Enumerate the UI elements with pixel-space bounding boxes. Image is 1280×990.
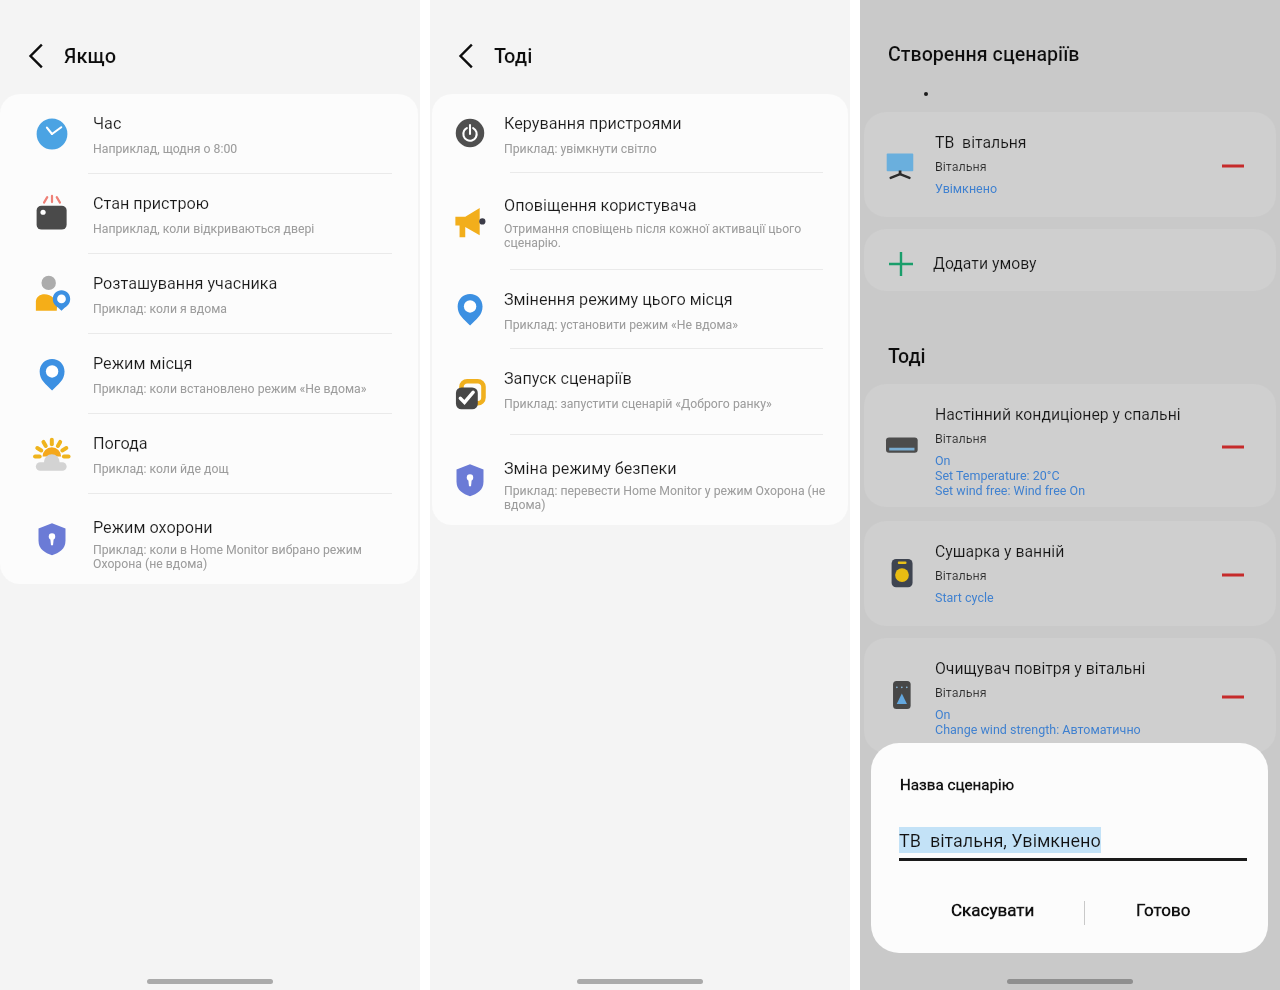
staticText: Приклад: увімкнути світло <box>504 142 657 156</box>
staticText: Вітальня <box>935 431 987 446</box>
staticText: Приклад: установити режим «Не вдома» <box>504 318 739 332</box>
staticText: On <box>935 707 951 722</box>
staticText: Розташування учасника <box>93 274 278 293</box>
button[interactable]: Скасувати <box>908 891 1078 929</box>
staticText: Зміна режиму безпеки <box>504 459 677 478</box>
staticText: Приклад: коли в Home Monitor вибрано реж… <box>93 543 362 571</box>
staticText: Скасувати <box>951 900 1035 920</box>
staticText: Стан пристрою <box>93 194 209 213</box>
staticText: Настінний кондиціонер у спальні <box>935 405 1181 424</box>
staticText: Готово <box>1136 900 1191 920</box>
button[interactable]: Погода <box>0 414 418 494</box>
button[interactable]: Змінення режиму цього місця <box>432 270 848 349</box>
staticText: Отримання сповіщень після кожної активац… <box>504 222 802 250</box>
staticText: Якщо <box>64 44 117 67</box>
staticText: Тоді <box>494 44 533 67</box>
staticText: Керування пристроями <box>504 114 682 133</box>
button[interactable]: Зміна режиму безпеки <box>432 435 848 525</box>
staticText: Приклад: перевести Home Monitor у режим … <box>504 484 826 512</box>
staticText: Start cycle <box>935 590 994 605</box>
button[interactable]: Remove <box>1219 150 1251 182</box>
button[interactable]: Очищувач повітря у вітальні <box>864 638 1276 753</box>
button[interactable]: Час <box>0 94 418 174</box>
button[interactable]: Стан пристрою <box>0 174 418 254</box>
staticText: Додати умову <box>933 254 1037 273</box>
staticText: Наприклад, коли відкриваються двері <box>93 222 315 236</box>
staticText: Оповіщення користувача <box>504 196 697 215</box>
staticText: Режим охорони <box>93 518 213 537</box>
staticText: Створення сценаріїв <box>888 43 1080 66</box>
staticText: Назва сценарію <box>900 776 1015 794</box>
staticText: Тоді <box>888 345 926 368</box>
button[interactable]: Оповіщення користувача <box>432 173 848 270</box>
staticText: Вітальня <box>935 568 987 583</box>
staticText: Вітальня <box>935 159 987 174</box>
button[interactable]: Remove <box>1219 431 1251 463</box>
staticText: Set wind free: Wind free On <box>935 483 1086 498</box>
button[interactable]: ТВ вітальня <box>864 112 1276 217</box>
staticText: Очищувач повітря у вітальні <box>935 659 1146 678</box>
staticText: Запуск сценаріїв <box>504 369 632 388</box>
staticText: Час <box>93 114 122 133</box>
button[interactable]: Back <box>446 36 486 76</box>
button[interactable]: Готово <box>1078 891 1248 929</box>
staticText: Змінення режиму цього місця <box>504 290 733 309</box>
button[interactable]: Режим охорони <box>0 494 418 584</box>
staticText: Наприклад, щодня о 8:00 <box>93 142 238 156</box>
button[interactable]: Remove <box>1219 559 1251 591</box>
staticText: Режим місця <box>93 354 193 373</box>
button[interactable]: Режим місця <box>0 334 418 414</box>
button[interactable]: Настінний кондиціонер у спальні <box>864 384 1276 507</box>
staticText: ТВ вітальня, Увімкнено <box>899 830 1101 851</box>
button[interactable]: Back <box>16 36 56 76</box>
button[interactable]: Запуск сценаріїв <box>432 349 848 435</box>
staticText: Сушарка у ванній <box>935 542 1065 561</box>
staticText: Приклад: коли встановлено режим «Не вдом… <box>93 382 367 396</box>
button[interactable]: Сушарка у ванній <box>864 521 1276 626</box>
button[interactable]: Розташування учасника <box>0 254 418 334</box>
staticText: Приклад: коли я вдома <box>93 302 227 316</box>
staticText: Change wind strength: Автоматично <box>935 722 1141 737</box>
staticText: Вітальня <box>935 685 987 700</box>
staticText: Увімкнено <box>935 181 998 196</box>
staticText: Приклад: коли йде дощ <box>93 462 229 476</box>
button[interactable]: Додати умову <box>864 229 1276 291</box>
button[interactable]: Remove <box>1219 681 1251 713</box>
staticText: Приклад: запустити сценарій «Доброго ран… <box>504 397 772 411</box>
staticText: Set Temperature: 20°C <box>935 468 1060 483</box>
staticText: Погода <box>93 434 148 453</box>
button[interactable]: Керування пристроями <box>432 94 848 173</box>
staticText: On <box>935 453 951 468</box>
staticText: ТВ вітальня <box>935 133 1027 152</box>
